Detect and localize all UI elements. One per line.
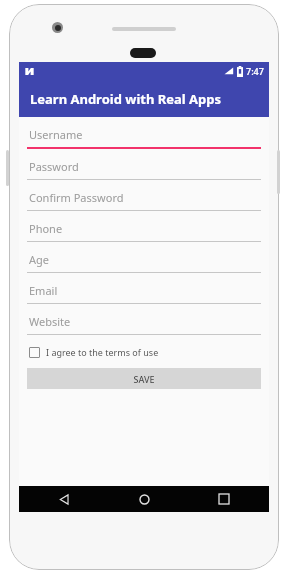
button[interactable]: Username [27,122,261,154]
staticText: I agree to the terms of use [46,346,159,358]
staticText: 7:47 [246,65,264,77]
button[interactable]: Learn Android with Real Apps [19,80,269,117]
button[interactable]: Recent apps [189,486,259,512]
button[interactable]: Age [27,247,261,278]
staticText: Email [29,283,58,298]
button[interactable]: Confirm Password [27,185,261,216]
button[interactable]: Phone [27,216,261,247]
button[interactable]: Password [27,154,261,185]
button[interactable]: Email [27,278,261,309]
button[interactable]: SAVE [27,368,261,389]
staticText: SAVE [133,373,155,385]
staticText: Username [29,127,83,142]
staticText: Phone [29,221,63,236]
button[interactable]: Home [109,486,179,512]
button[interactable]: I agree to the terms of use [27,342,261,362]
staticText: Website [29,314,71,329]
staticText: Password [29,159,79,174]
staticText: Age [29,252,49,267]
button[interactable]: Website [27,309,261,340]
staticText: Confirm Password [29,190,124,205]
button[interactable]: Back [29,486,99,512]
staticText: Learn Android with Real Apps [30,90,222,108]
